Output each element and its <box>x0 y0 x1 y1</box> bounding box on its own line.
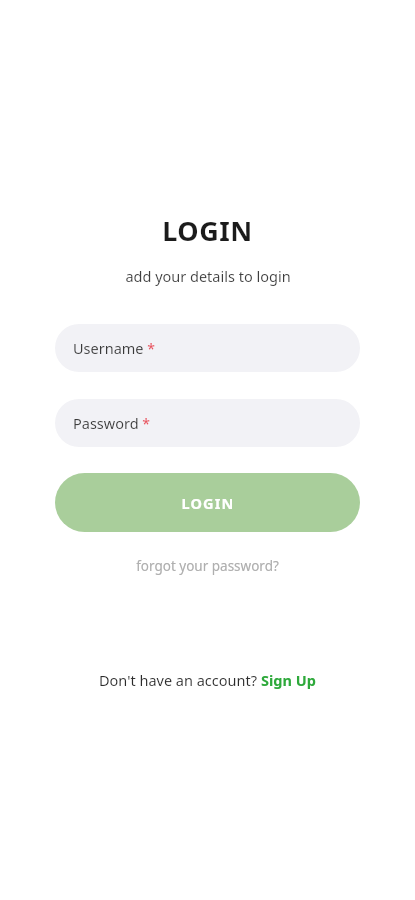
button[interactable]: LOGIN <box>55 473 360 532</box>
staticText: Username * <box>73 338 156 358</box>
staticText: Password * <box>73 413 151 433</box>
button[interactable]: Sign Up <box>261 670 316 690</box>
staticText: Don't have an account? <box>99 670 261 690</box>
staticText: add your details to login <box>125 266 291 286</box>
button[interactable]: Password * <box>55 399 360 447</box>
button[interactable]: Username * <box>55 324 360 372</box>
staticText: LOGIN <box>181 493 235 513</box>
staticText: Sign Up <box>261 670 316 690</box>
staticText: LOGIN <box>162 212 253 249</box>
button[interactable]: forgot your password? <box>126 553 289 579</box>
staticText: forgot your password? <box>136 557 279 575</box>
